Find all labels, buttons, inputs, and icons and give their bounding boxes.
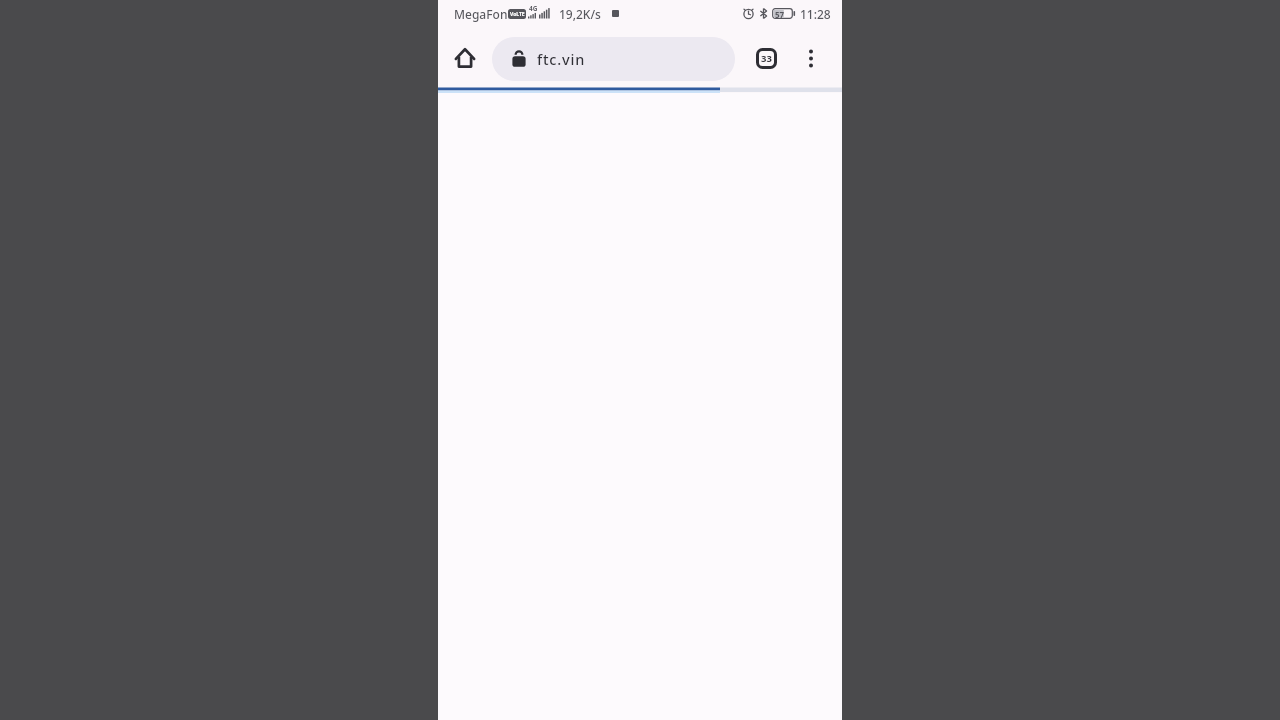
staticText: 11:28 (800, 6, 831, 22)
button[interactable] (448, 42, 482, 74)
button[interactable]: 33 (750, 42, 782, 74)
button[interactable] (796, 40, 826, 76)
button[interactable]: ftc.vin (492, 37, 735, 81)
staticText: 33 (761, 52, 772, 65)
staticText: 4G (529, 4, 538, 13)
staticText: MegaFon (454, 6, 508, 22)
staticText: 57 (775, 9, 785, 20)
staticText: ftc.vin (537, 49, 586, 69)
staticText: VoLTE (510, 11, 525, 18)
staticText: 19,2K/s (559, 6, 601, 22)
